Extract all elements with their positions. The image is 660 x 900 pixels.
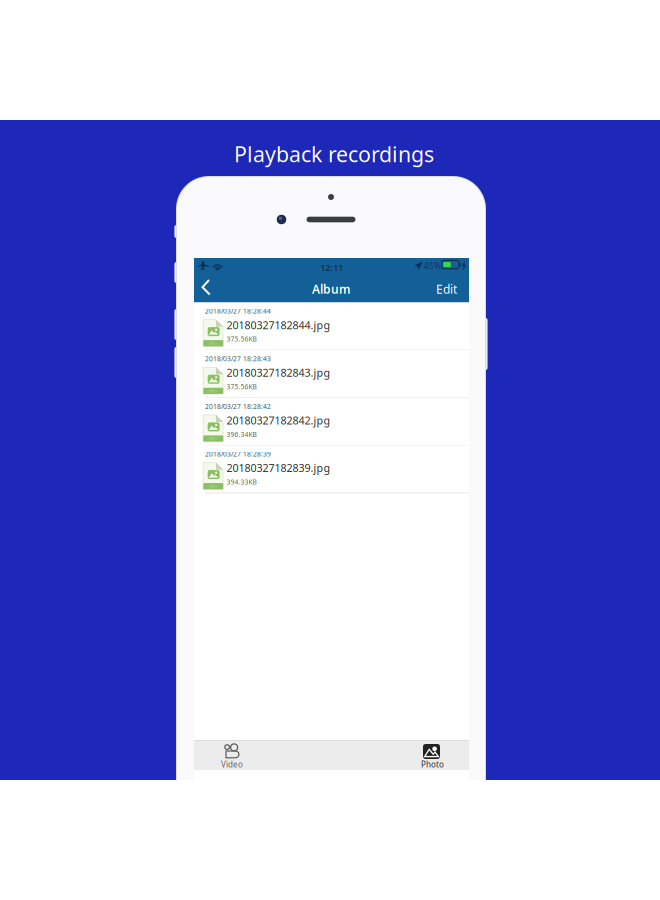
button[interactable]: 2018/03/27 18:28:42 <box>194 398 469 445</box>
staticText: 2018/03/27 18:28:42 <box>205 402 271 411</box>
staticText: 394.33KB <box>226 477 256 486</box>
button[interactable]: 2018/03/27 18:28:44 <box>194 302 469 350</box>
staticText: 2018/03/27 18:28:43 <box>205 354 271 363</box>
staticText: Video <box>221 759 243 770</box>
button[interactable]: 2018/03/27 18:28:43 <box>194 350 469 398</box>
button[interactable]: Back <box>195 272 225 302</box>
staticText: 396.34KB <box>226 430 256 439</box>
button[interactable]: Video <box>194 740 331 770</box>
staticText: 20180327182844.jpg <box>226 318 330 332</box>
button[interactable]: Photo <box>331 740 469 770</box>
staticText: 375.56KB <box>226 335 256 343</box>
staticText: 12:11 <box>320 261 343 274</box>
staticText: 20180327182843.jpg <box>226 366 330 380</box>
staticText: JPEG <box>209 341 217 346</box>
button[interactable]: Edit <box>421 275 461 299</box>
staticText: 45% <box>424 261 441 271</box>
staticText: Edit <box>436 281 457 297</box>
staticText: 375.56KB <box>226 382 256 391</box>
staticText: JPEG <box>209 484 217 489</box>
staticText: 20180327182842.jpg <box>226 413 330 427</box>
staticText: Playback recordings <box>234 140 434 168</box>
staticText: 2018/03/27 18:28:39 <box>205 449 271 458</box>
staticText: JPEG <box>209 388 217 394</box>
staticText: 20180327182839.jpg <box>226 461 330 475</box>
staticText: Album <box>312 281 351 297</box>
button[interactable]: 2018/03/27 18:28:39 <box>194 445 469 493</box>
staticText: 2018/03/27 18:28:44 <box>205 307 271 315</box>
staticText: Photo <box>421 759 444 770</box>
staticText: JPEG <box>209 436 217 441</box>
